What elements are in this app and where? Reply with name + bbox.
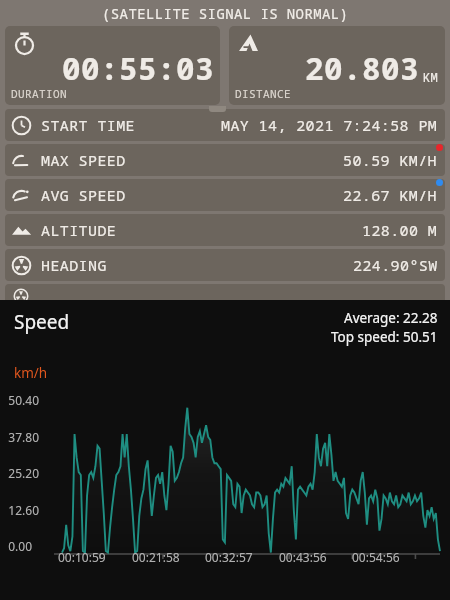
staticText: 50.59 KM/H <box>343 150 438 170</box>
staticText: AVG SPEED <box>41 185 126 205</box>
button[interactable]: DISTANCE <box>229 26 445 105</box>
staticText: km/h <box>14 364 48 382</box>
staticText: 00:32:57 <box>205 549 253 565</box>
staticText: 37.80 <box>8 429 39 445</box>
staticText: MAX SPEED <box>41 150 126 170</box>
staticText: KM <box>423 69 439 85</box>
staticText: ALTITUDE <box>41 220 117 240</box>
button[interactable]: START TIME <box>5 109 445 141</box>
staticText: Top speed: 50.51 <box>331 328 438 346</box>
button[interactable]: ALTITUDE <box>5 214 445 246</box>
staticText: 00:54:56 <box>352 549 400 565</box>
other: DURATION <box>12 31 37 56</box>
staticText: Average: 22.28 <box>344 309 438 327</box>
staticText: DURATION <box>11 86 67 101</box>
staticText: 00:55:03 <box>62 47 214 89</box>
staticText: 25.20 <box>8 465 39 481</box>
button[interactable]: DURATION <box>5 26 220 105</box>
button[interactable]: MAX SPEED <box>5 144 445 176</box>
button[interactable]: AVG SPEED <box>5 179 445 211</box>
staticText: START TIME <box>41 115 136 135</box>
staticText: DISTANCE <box>235 86 291 101</box>
staticText: 00:43:56 <box>279 549 327 565</box>
staticText: HEADING <box>41 255 107 275</box>
staticText: 0.00 <box>8 538 32 554</box>
staticText: 50.40 <box>8 392 39 408</box>
staticText: 12.60 <box>8 502 39 518</box>
staticText: Speed <box>14 309 70 335</box>
button[interactable] <box>5 284 445 300</box>
staticText: 20.803 <box>305 47 419 89</box>
staticText: 224.90°SW <box>353 255 438 275</box>
staticText: 128.00 M <box>362 220 438 240</box>
staticText: 00:21:58 <box>132 549 180 565</box>
button[interactable]: HEADING <box>5 249 445 281</box>
staticText: (SATELLITE SIGNAL IS NORMAL) <box>102 4 349 23</box>
staticText: MAY 14, 2021 7:24:58 PM <box>221 115 438 135</box>
staticText: 22.67 KM/H <box>343 185 438 205</box>
staticText: 00:10:59 <box>58 549 106 565</box>
other: DISTANCE <box>236 31 261 56</box>
